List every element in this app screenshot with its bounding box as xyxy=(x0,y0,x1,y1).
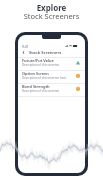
staticText: 9:41 xyxy=(22,44,29,49)
staticText: Stock Screeners xyxy=(29,50,62,56)
staticText: Option Screen xyxy=(22,71,49,76)
staticText: Bond Strength xyxy=(22,84,50,89)
staticText: Future/Fut Value xyxy=(22,58,54,63)
button[interactable]: Option Screen xyxy=(18,71,85,84)
button[interactable]: Back xyxy=(20,49,27,56)
staticText: Description of this screener here xyxy=(22,76,67,80)
button[interactable]: Bond Strength xyxy=(18,84,85,97)
staticText: Description of this screener xyxy=(22,89,60,93)
staticText: Stock Screeners xyxy=(0,11,103,21)
staticText: Explore xyxy=(0,2,103,13)
button[interactable]: Future/Fut Value xyxy=(18,58,85,71)
staticText: Description of this screener xyxy=(22,63,60,67)
